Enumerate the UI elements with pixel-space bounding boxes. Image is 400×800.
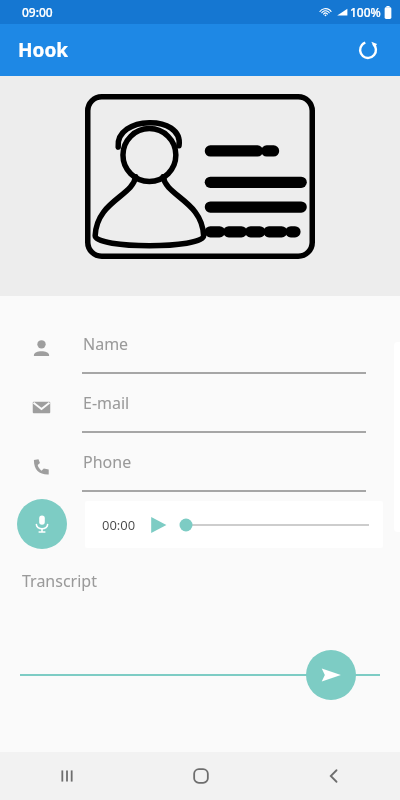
button[interactable]: 00:00 xyxy=(85,501,383,548)
staticText: Transcript xyxy=(22,570,97,592)
button[interactable]: Phone xyxy=(0,440,400,492)
button[interactable]: Send xyxy=(306,650,356,700)
button[interactable]: Record audio xyxy=(17,499,67,549)
button[interactable]: Name xyxy=(0,322,400,374)
staticText: 100% xyxy=(350,4,381,20)
staticText: Phone xyxy=(83,451,132,473)
button[interactable]: Recents xyxy=(0,752,134,800)
staticText: Hook xyxy=(18,37,69,63)
staticText: E-mail xyxy=(83,392,130,414)
staticText: 09:00 xyxy=(22,4,53,20)
staticText: 00:00 xyxy=(102,516,136,534)
button[interactable]: Home xyxy=(134,752,267,800)
button[interactable]: Play xyxy=(146,513,170,537)
button[interactable]: E-mail xyxy=(0,381,400,433)
staticText: Name xyxy=(83,333,129,355)
button[interactable]: Refresh xyxy=(346,28,390,72)
button[interactable]: Back xyxy=(267,752,400,800)
